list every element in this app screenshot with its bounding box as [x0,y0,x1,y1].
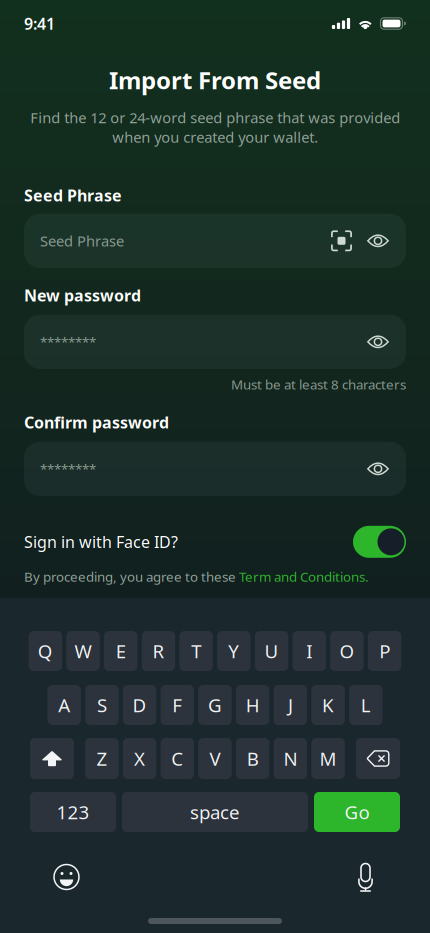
staticText: Q [38,639,53,663]
button[interactable]: 123 [30,792,116,832]
staticText: A [58,693,70,717]
button[interactable]: D [123,685,156,725]
button[interactable]: J [274,685,307,725]
staticText: S [97,693,107,717]
button[interactable]: Emoji keyboard [51,862,81,892]
staticText: W [75,639,92,663]
staticText: V [209,746,220,771]
button[interactable]: M [311,738,345,779]
staticText: Go [344,800,369,824]
staticText: G [208,693,222,717]
button[interactable]: K [311,685,345,725]
staticText: R [152,639,164,663]
staticText: F [172,693,182,717]
button[interactable]: I [293,631,326,671]
button[interactable]: G [198,685,232,725]
staticText: Confirm password [24,412,169,433]
staticText: J [288,693,293,717]
button[interactable]: Shift [30,738,74,779]
button[interactable]: Y [217,631,251,671]
button[interactable]: U [255,631,288,671]
button[interactable]: ******** [24,442,406,496]
button[interactable]: C [161,738,194,779]
button[interactable]: T [179,631,213,671]
button[interactable]: E [104,631,137,671]
staticText: N [283,746,297,771]
staticText: M [320,746,337,771]
button[interactable]: Go [314,792,400,832]
staticText: Import From Seed [109,64,321,96]
button[interactable]: W [66,631,100,671]
staticText: Y [228,639,239,663]
staticText: O [339,639,354,663]
staticText: I [306,639,312,663]
button[interactable]: R [142,631,175,671]
staticText: P [379,639,390,663]
staticText: By proceeding, you agree to these [24,568,239,585]
button[interactable]: O [330,631,364,671]
staticText: Seed Phrase [40,231,124,251]
staticText: space [190,800,240,824]
button[interactable]: space [122,792,308,832]
staticText: 123 [56,800,89,824]
staticText: H [246,693,260,717]
staticText: Must be at least 8 characters [231,375,406,393]
button[interactable]: S [85,685,119,725]
staticText: U [265,639,279,663]
button[interactable]: X [123,738,156,779]
staticText: X [134,746,145,771]
button[interactable]: Dictation [352,862,378,892]
staticText: 9:41 [24,13,55,34]
button[interactable]: V [198,738,232,779]
staticText: Seed Phrase [24,185,122,206]
staticText: T [191,639,201,663]
staticText: D [133,693,147,717]
staticText: ******** [40,460,96,478]
staticText: C [171,746,183,771]
staticText: Sign in with Face ID? [24,531,178,552]
staticText: Term and Conditions. [239,568,369,585]
staticText: Z [96,746,107,771]
staticText: Find the 12 or 24-word seed phrase that … [30,108,400,147]
button[interactable]: F [161,685,194,725]
button[interactable]: H [236,685,269,725]
button[interactable]: Seed Phrase [24,214,406,268]
staticText: New password [24,285,141,306]
staticText: E [116,639,126,663]
staticText: L [361,693,371,717]
button[interactable]: Z [85,738,119,779]
button[interactable]: P [368,631,401,671]
button[interactable]: Delete [356,738,400,779]
button[interactable]: B [236,738,269,779]
staticText: B [247,746,259,771]
button[interactable]: N [274,738,307,779]
button[interactable]: Q [29,631,62,671]
button[interactable]: L [349,685,382,725]
button[interactable]: Term and Conditions. [239,568,369,585]
button[interactable]: A [47,685,81,725]
staticText: ******** [40,333,96,351]
button[interactable]: Sign in with Face ID [353,526,406,558]
staticText: K [322,693,334,717]
button[interactable]: ******** [24,315,406,369]
